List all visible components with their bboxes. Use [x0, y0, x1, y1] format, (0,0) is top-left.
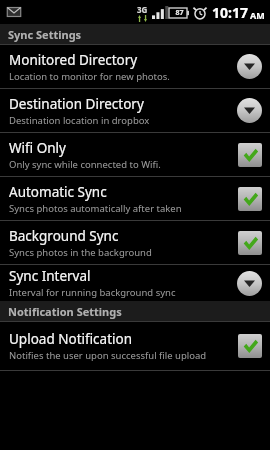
- staticText: Interval for running background sync: [9, 286, 176, 299]
- staticText: Upload Notification: [9, 330, 133, 348]
- staticText: Notification Settings: [8, 304, 122, 319]
- staticText: Automatic Sync: [9, 183, 107, 201]
- staticText: Notifies the user upon successful file u…: [9, 349, 207, 362]
- staticText: Destination Directory: [9, 95, 144, 113]
- staticText: Syncs photos in the background: [9, 246, 152, 259]
- button[interactable]: Background Sync: [0, 221, 270, 264]
- button[interactable]: Monitored Directory: [0, 45, 270, 88]
- button[interactable]: Enabled: [238, 143, 262, 167]
- staticText: Sync Interval: [9, 267, 91, 285]
- staticText: Syncs photos automatically after taken: [9, 202, 182, 215]
- button[interactable]: Wifi Only: [0, 133, 270, 176]
- button[interactable]: Upload Notification: [0, 322, 270, 370]
- button[interactable]: Destination Directory: [0, 89, 270, 132]
- staticText: 10:17: [212, 3, 248, 22]
- staticText: Monitored Directory: [9, 51, 138, 69]
- button[interactable]: Enabled: [238, 187, 262, 211]
- staticText: 3G: [137, 4, 148, 15]
- button[interactable]: Sync Interval: [0, 265, 270, 301]
- staticText: Background Sync: [9, 227, 119, 245]
- button[interactable]: Open options: [237, 54, 262, 79]
- staticText: Wifi Only: [9, 139, 66, 157]
- button[interactable]: Automatic Sync: [0, 177, 270, 220]
- button[interactable]: Open options: [237, 271, 262, 296]
- button[interactable]: Enabled: [238, 231, 262, 255]
- staticText: Only sync while connected to Wifi.: [9, 158, 161, 171]
- button[interactable]: Enabled: [238, 334, 262, 358]
- staticText: AM: [250, 9, 265, 21]
- button[interactable]: Open options: [237, 98, 262, 123]
- staticText: 87: [175, 8, 184, 18]
- staticText: Destination location in dropbox: [9, 114, 150, 127]
- staticText: Location to monitor for new photos.: [9, 70, 170, 83]
- staticText: Sync Settings: [8, 27, 82, 42]
